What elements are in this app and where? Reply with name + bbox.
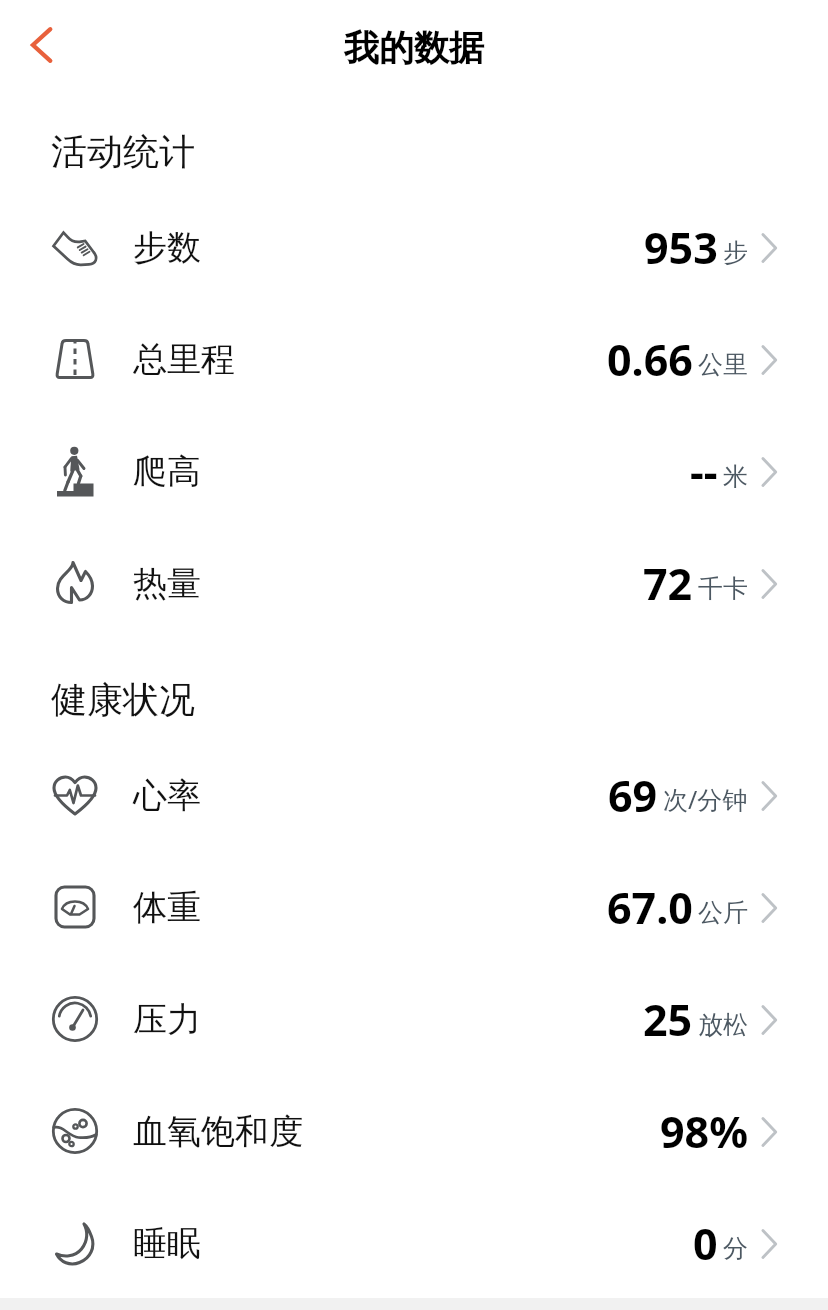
button[interactable]: 热量 [0, 527, 828, 639]
staticText: 活动统计 [51, 129, 195, 174]
staticText: 我的数据 [344, 26, 484, 70]
staticText: 98% [660, 1102, 748, 1161]
button[interactable]: 步数 [0, 191, 828, 303]
button[interactable]: 血氧饱和度 [0, 1075, 828, 1187]
staticText: 公里 [698, 349, 748, 380]
staticText: 放松 [698, 1009, 748, 1040]
staticText: 心率 [133, 774, 201, 817]
button[interactable]: 心率 [0, 739, 828, 851]
staticText: 千卡 [698, 573, 748, 604]
staticText: 米 [723, 461, 748, 492]
button[interactable]: 总里程 [0, 303, 828, 415]
staticText: 健康状况 [51, 677, 195, 722]
staticText: 压力 [133, 998, 201, 1041]
staticText: 步数 [133, 226, 201, 269]
staticText: 72 [643, 554, 693, 613]
staticText: 0 [693, 1214, 718, 1273]
staticText: 次/分钟 [663, 782, 748, 816]
staticText: 爬高 [133, 450, 201, 493]
button[interactable]: 睡眠 [0, 1187, 828, 1299]
button[interactable]: 压力 [0, 963, 828, 1075]
button[interactable]: 体重 [0, 851, 828, 963]
staticText: 睡眠 [133, 1222, 201, 1265]
button[interactable]: 爬高 [0, 415, 828, 527]
staticText: 步 [723, 237, 748, 268]
staticText: 953 [644, 218, 718, 277]
staticText: 血氧饱和度 [133, 1110, 303, 1153]
staticText: 公斤 [698, 897, 748, 928]
staticText: 总里程 [133, 338, 235, 381]
staticText: 分 [723, 1233, 748, 1264]
staticText: -- [690, 442, 718, 501]
button[interactable]: Back [11, 15, 71, 75]
staticText: 体重 [133, 886, 201, 929]
staticText: 热量 [133, 562, 201, 605]
staticText: 69 [608, 766, 658, 825]
staticText: 67.0 [607, 878, 693, 937]
staticText: 0.66 [607, 330, 693, 389]
staticText: 25 [643, 990, 693, 1049]
